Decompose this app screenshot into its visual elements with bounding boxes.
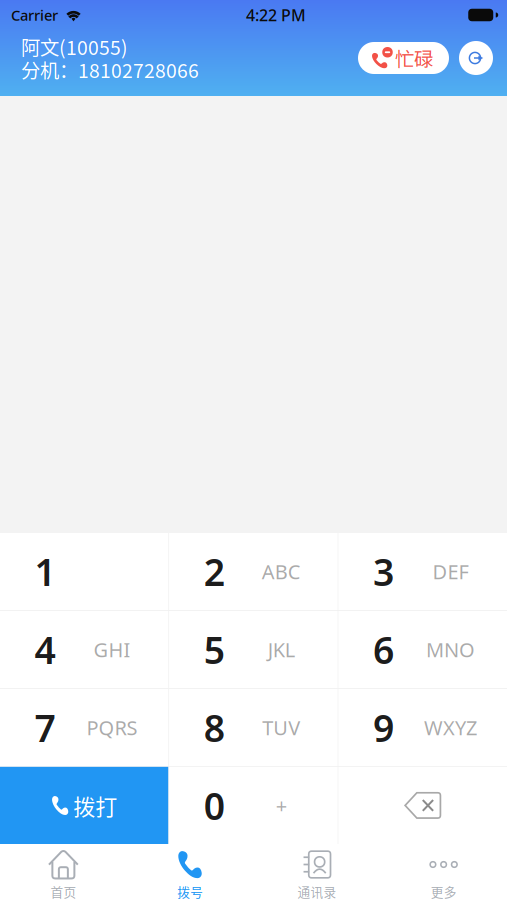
staticText: 更多 — [431, 882, 457, 900]
button[interactable]: 4 — [0, 611, 168, 688]
staticText: 9 — [373, 703, 394, 752]
staticText: DEF — [432, 558, 468, 585]
staticText: WXYZ — [424, 714, 477, 741]
staticText: 2 — [204, 547, 225, 596]
button[interactable]: 更多 — [380, 844, 507, 900]
staticText: 6 — [373, 625, 394, 674]
staticText: TUV — [262, 714, 300, 741]
staticText: 5 — [204, 625, 225, 674]
button[interactable]: 9 — [338, 689, 507, 766]
button[interactable]: 1 — [0, 533, 168, 610]
button[interactable]: 2 — [169, 533, 338, 610]
button[interactable]: 6 — [338, 611, 507, 688]
button[interactable]: 忙碌 — [358, 42, 449, 74]
staticText: 4:22 PM — [246, 4, 306, 26]
button[interactable]: 7 — [0, 689, 168, 766]
staticText: 通讯录 — [297, 882, 336, 900]
staticText: JKL — [268, 636, 295, 663]
staticText: 首页 — [50, 882, 76, 900]
button[interactable]: Delete — [338, 767, 507, 844]
staticText: + — [276, 792, 287, 819]
staticText: 0 — [204, 781, 225, 830]
button[interactable]: 首页 — [0, 844, 127, 900]
staticText: Carrier — [11, 5, 58, 25]
button[interactable]: Sign out — [459, 41, 493, 75]
staticText: 阿文(10055) — [21, 32, 128, 60]
button[interactable]: 3 — [338, 533, 507, 610]
staticText: 4 — [34, 625, 55, 674]
staticText: 分机：18102728066 — [21, 55, 199, 83]
staticText: GHI — [93, 636, 130, 663]
button[interactable]: 通讯录 — [253, 844, 380, 900]
button[interactable]: 5 — [169, 611, 338, 688]
staticText: 拨打 — [73, 789, 117, 821]
staticText: MNO — [426, 636, 475, 663]
button[interactable]: 拨号 — [127, 844, 254, 900]
staticText: ABC — [262, 558, 301, 585]
button[interactable]: 8 — [169, 689, 338, 766]
staticText: 1 — [34, 547, 55, 596]
staticText: 7 — [34, 703, 55, 752]
staticText: 拨号 — [177, 882, 203, 900]
button[interactable]: 0 — [169, 767, 338, 844]
button[interactable]: 拨打 — [0, 767, 168, 844]
staticText: PQRS — [86, 714, 137, 741]
staticText: 3 — [373, 547, 394, 596]
staticText: 8 — [204, 703, 225, 752]
staticText: 忙碌 — [395, 44, 433, 72]
